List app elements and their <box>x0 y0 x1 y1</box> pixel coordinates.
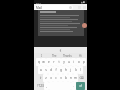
button[interactable]: , <box>44 82 49 90</box>
button[interactable]: ⇧ <box>37 74 43 82</box>
button[interactable]: t <box>56 58 61 66</box>
button[interactable]: Hi <box>74 53 87 58</box>
staticText: t <box>58 60 60 64</box>
staticText: z <box>45 76 47 80</box>
staticText: ?123 <box>37 84 44 88</box>
staticText: f <box>55 68 57 72</box>
staticText: q <box>38 60 40 64</box>
button[interactable]: p <box>81 58 86 66</box>
staticText: g <box>60 68 62 72</box>
staticText: v <box>60 76 62 80</box>
staticText: d <box>50 68 52 72</box>
button[interactable]: s <box>43 66 48 74</box>
button[interactable]: ?123 <box>37 82 44 90</box>
button[interactable]: o <box>76 58 81 66</box>
staticText: y <box>63 60 65 64</box>
staticText: l <box>80 68 81 72</box>
button[interactable]: ⏎ <box>76 82 85 90</box>
button[interactable] <box>82 23 87 28</box>
button[interactable]: Thanks <box>61 53 74 58</box>
staticText: x <box>50 76 52 80</box>
button[interactable]: w <box>41 58 46 66</box>
button[interactable]: v <box>58 74 63 82</box>
button[interactable]: g <box>58 66 63 74</box>
staticText: ⏎ <box>79 84 82 88</box>
staticText: 9:41 <box>36 1 41 4</box>
button[interactable]: u <box>66 58 71 66</box>
button[interactable]: r <box>51 58 56 66</box>
staticText: k <box>75 68 77 72</box>
staticText: I <box>41 54 42 58</box>
staticText: u <box>68 60 70 64</box>
staticText: c <box>55 76 57 80</box>
button[interactable]: j <box>68 66 73 74</box>
button[interactable]: k <box>73 66 78 74</box>
staticText: ⇧ <box>39 76 42 80</box>
button[interactable]: I <box>34 53 48 58</box>
staticText: Mail <box>36 6 43 10</box>
staticText: w <box>42 60 45 64</box>
button[interactable]: e <box>46 58 51 66</box>
button[interactable]: d <box>48 66 53 74</box>
button[interactable]: c <box>53 74 58 82</box>
staticText: r <box>53 60 55 64</box>
button[interactable]: b <box>63 74 68 82</box>
button[interactable]: m <box>73 74 78 82</box>
staticText: b <box>65 76 67 80</box>
button[interactable]: q <box>36 58 41 66</box>
button[interactable]: h <box>63 66 68 74</box>
button[interactable]: x <box>48 74 53 82</box>
button[interactable]: Profile <box>69 6 72 9</box>
button[interactable]: ⌫ <box>78 74 84 82</box>
button[interactable]: . <box>71 82 76 90</box>
staticText: m <box>74 76 77 80</box>
staticText: e <box>48 60 50 64</box>
staticText: , <box>46 84 47 88</box>
button[interactable]: a <box>38 66 43 74</box>
button[interactable]: n <box>68 74 73 82</box>
button[interactable]: z <box>43 74 48 82</box>
staticText: . <box>73 84 74 88</box>
button[interactable]: l <box>78 66 83 74</box>
staticText: ⌫ <box>79 76 84 80</box>
staticText: i <box>73 60 74 64</box>
staticText: j <box>70 68 71 72</box>
button[interactable]: y <box>61 58 66 66</box>
button[interactable]: Back <box>58 48 63 53</box>
staticText: p <box>83 60 85 64</box>
staticText: Thanks <box>63 54 72 58</box>
staticText: h <box>65 68 67 72</box>
staticText: s <box>45 68 47 72</box>
button[interactable]: i <box>71 58 76 66</box>
staticText: Hi <box>79 54 82 58</box>
button[interactable]: Mail <box>35 5 73 10</box>
staticText: a <box>40 68 42 72</box>
staticText: ▲■ <box>81 1 85 4</box>
staticText: The <box>52 54 57 58</box>
button[interactable]: f <box>53 66 58 74</box>
staticText: n <box>70 76 72 80</box>
staticText: o <box>78 60 80 64</box>
button[interactable]: The <box>48 53 61 58</box>
